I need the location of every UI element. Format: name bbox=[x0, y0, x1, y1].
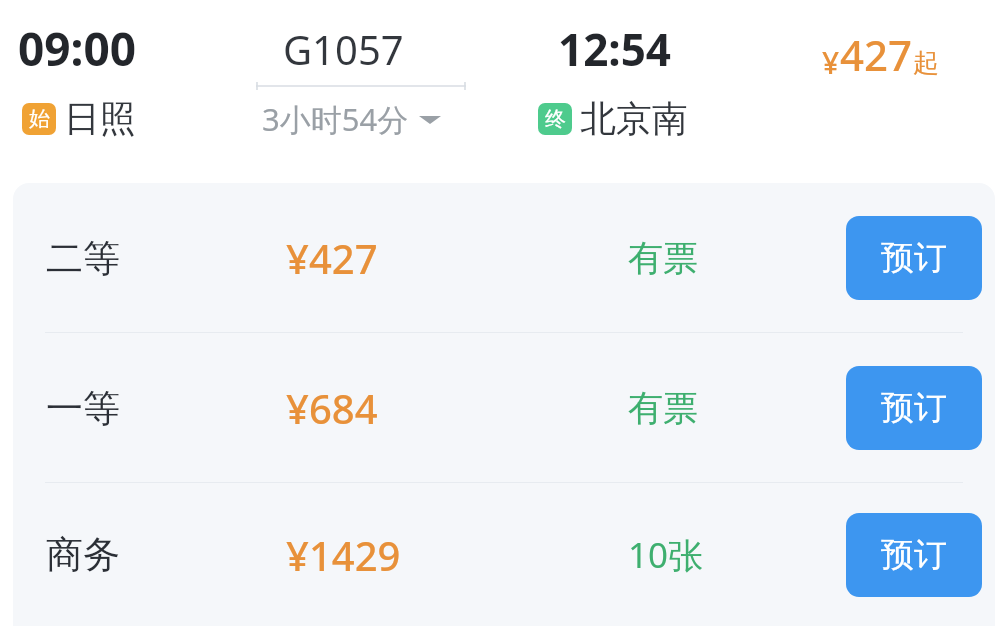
staticText: 10张 bbox=[628, 531, 704, 579]
staticText: 3小时54分 bbox=[262, 98, 409, 140]
staticText: 一等 bbox=[46, 385, 120, 432]
staticText: G1057 bbox=[283, 22, 404, 76]
staticText: 12:54 bbox=[558, 19, 672, 79]
button[interactable]: 预订 bbox=[846, 216, 982, 300]
staticText: 起 bbox=[913, 47, 939, 80]
staticText: 日照 bbox=[64, 96, 136, 141]
staticText: 427 bbox=[840, 26, 913, 83]
staticText: ¥427 bbox=[286, 231, 378, 285]
staticText: 有票 bbox=[628, 236, 698, 280]
staticText: ¥1429 bbox=[286, 528, 401, 582]
other: Expand details bbox=[419, 112, 441, 126]
button[interactable]: 3小时54分 bbox=[262, 98, 441, 140]
staticText: 09:00 bbox=[18, 17, 137, 80]
staticText: 预订 bbox=[881, 534, 947, 576]
staticText: ¥ bbox=[822, 42, 840, 83]
staticText: 北京南 bbox=[580, 96, 688, 141]
staticText: 始 bbox=[29, 106, 50, 132]
staticText: 商务 bbox=[46, 531, 120, 578]
staticText: 有票 bbox=[628, 386, 698, 430]
staticText: 二等 bbox=[46, 235, 120, 282]
staticText: 终 bbox=[545, 106, 566, 132]
button[interactable]: 预订 bbox=[846, 513, 982, 597]
staticText: 预订 bbox=[881, 237, 947, 279]
staticText: 预订 bbox=[881, 387, 947, 429]
staticText: ¥684 bbox=[286, 381, 378, 435]
button[interactable]: 预订 bbox=[846, 366, 982, 450]
